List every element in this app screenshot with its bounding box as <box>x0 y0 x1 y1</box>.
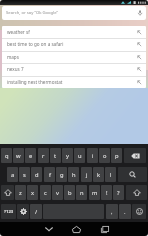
button[interactable]: h <box>68 167 79 182</box>
button[interactable] <box>42 222 55 236</box>
button[interactable] <box>124 148 146 163</box>
button[interactable]: weather sf <box>2 26 146 38</box>
button[interactable]: k <box>93 167 104 182</box>
button[interactable]: ! <box>101 185 112 200</box>
button[interactable]: m <box>89 185 100 200</box>
button[interactable]: t <box>50 148 61 163</box>
button[interactable]: b <box>64 185 75 200</box>
staticText: ? <box>117 189 120 197</box>
staticText: k <box>97 171 101 179</box>
button[interactable]: , <box>106 204 118 219</box>
button[interactable] <box>1 185 14 200</box>
staticText: / <box>35 208 38 216</box>
staticText: nexus 7 <box>7 66 24 72</box>
staticText: e <box>29 152 33 160</box>
button[interactable]: w <box>13 148 24 163</box>
button[interactable] <box>70 222 83 236</box>
button[interactable]: installing nest thermostat <box>2 76 146 88</box>
button[interactable]: ? <box>113 185 124 200</box>
button[interactable] <box>126 185 147 200</box>
staticText: h <box>72 171 76 179</box>
button[interactable] <box>132 204 146 219</box>
staticText: m <box>92 189 98 197</box>
button[interactable]: z <box>15 185 26 200</box>
button[interactable]: n <box>76 185 87 200</box>
staticText: b <box>68 189 72 197</box>
staticText: t <box>54 152 57 160</box>
button[interactable]: s <box>19 167 30 182</box>
button[interactable]: o <box>99 148 110 163</box>
button[interactable]: g <box>56 167 67 182</box>
button[interactable]: x <box>27 185 38 200</box>
staticText: , <box>111 208 113 216</box>
button[interactable]: i <box>87 148 98 163</box>
staticText: d <box>35 171 39 179</box>
button[interactable]: maps <box>2 51 146 63</box>
staticText: y <box>66 152 69 160</box>
staticText: installing nest thermostat <box>7 79 63 85</box>
staticText: o <box>103 152 107 160</box>
button[interactable]: p <box>111 148 122 163</box>
button[interactable]: j <box>81 167 92 182</box>
staticText: c <box>44 189 47 197</box>
staticText: f <box>49 171 51 179</box>
button[interactable]: y <box>62 148 73 163</box>
staticText: x <box>31 189 35 197</box>
button[interactable]: / <box>30 204 42 219</box>
button[interactable]: nexus 7 <box>2 63 146 75</box>
button[interactable]: a <box>7 167 18 182</box>
staticText: . <box>124 208 126 216</box>
staticText: maps <box>7 54 19 60</box>
staticText: p <box>115 152 119 160</box>
staticText: best time to go on a safari <box>7 41 64 47</box>
staticText: n <box>80 189 84 197</box>
staticText: ! <box>106 189 108 197</box>
staticText: a <box>11 171 15 179</box>
staticText: q <box>5 152 9 160</box>
button[interactable]: e <box>25 148 36 163</box>
button[interactable] <box>98 222 111 236</box>
staticText: Search, or say “Ok Google” <box>6 10 59 16</box>
staticText: s <box>23 171 26 179</box>
button[interactable]: r <box>38 148 49 163</box>
button[interactable] <box>17 204 29 219</box>
button[interactable]: d <box>31 167 42 182</box>
staticText: r <box>42 152 45 160</box>
staticText: w <box>16 152 21 160</box>
staticText: z <box>19 189 22 197</box>
staticText: g <box>60 171 64 179</box>
button[interactable]: ?123 <box>1 204 16 219</box>
staticText: j <box>86 171 88 179</box>
button[interactable]: u <box>74 148 85 163</box>
staticText: u <box>78 152 82 160</box>
button[interactable]: v <box>52 185 63 200</box>
staticText: v <box>56 189 59 197</box>
button[interactable]: best time to go on a safari <box>2 38 146 50</box>
button[interactable]: c <box>40 185 51 200</box>
staticText: weather sf <box>7 29 30 35</box>
button[interactable]: q <box>1 148 12 163</box>
button[interactable] <box>118 167 147 182</box>
button[interactable]: Search, or say “Ok Google” <box>2 6 146 20</box>
staticText: ?123 <box>4 209 14 215</box>
button[interactable]: . <box>119 204 131 219</box>
button[interactable]: f <box>44 167 55 182</box>
staticText: l <box>110 171 112 179</box>
staticText: i <box>92 152 94 160</box>
button[interactable]: l <box>105 167 116 182</box>
